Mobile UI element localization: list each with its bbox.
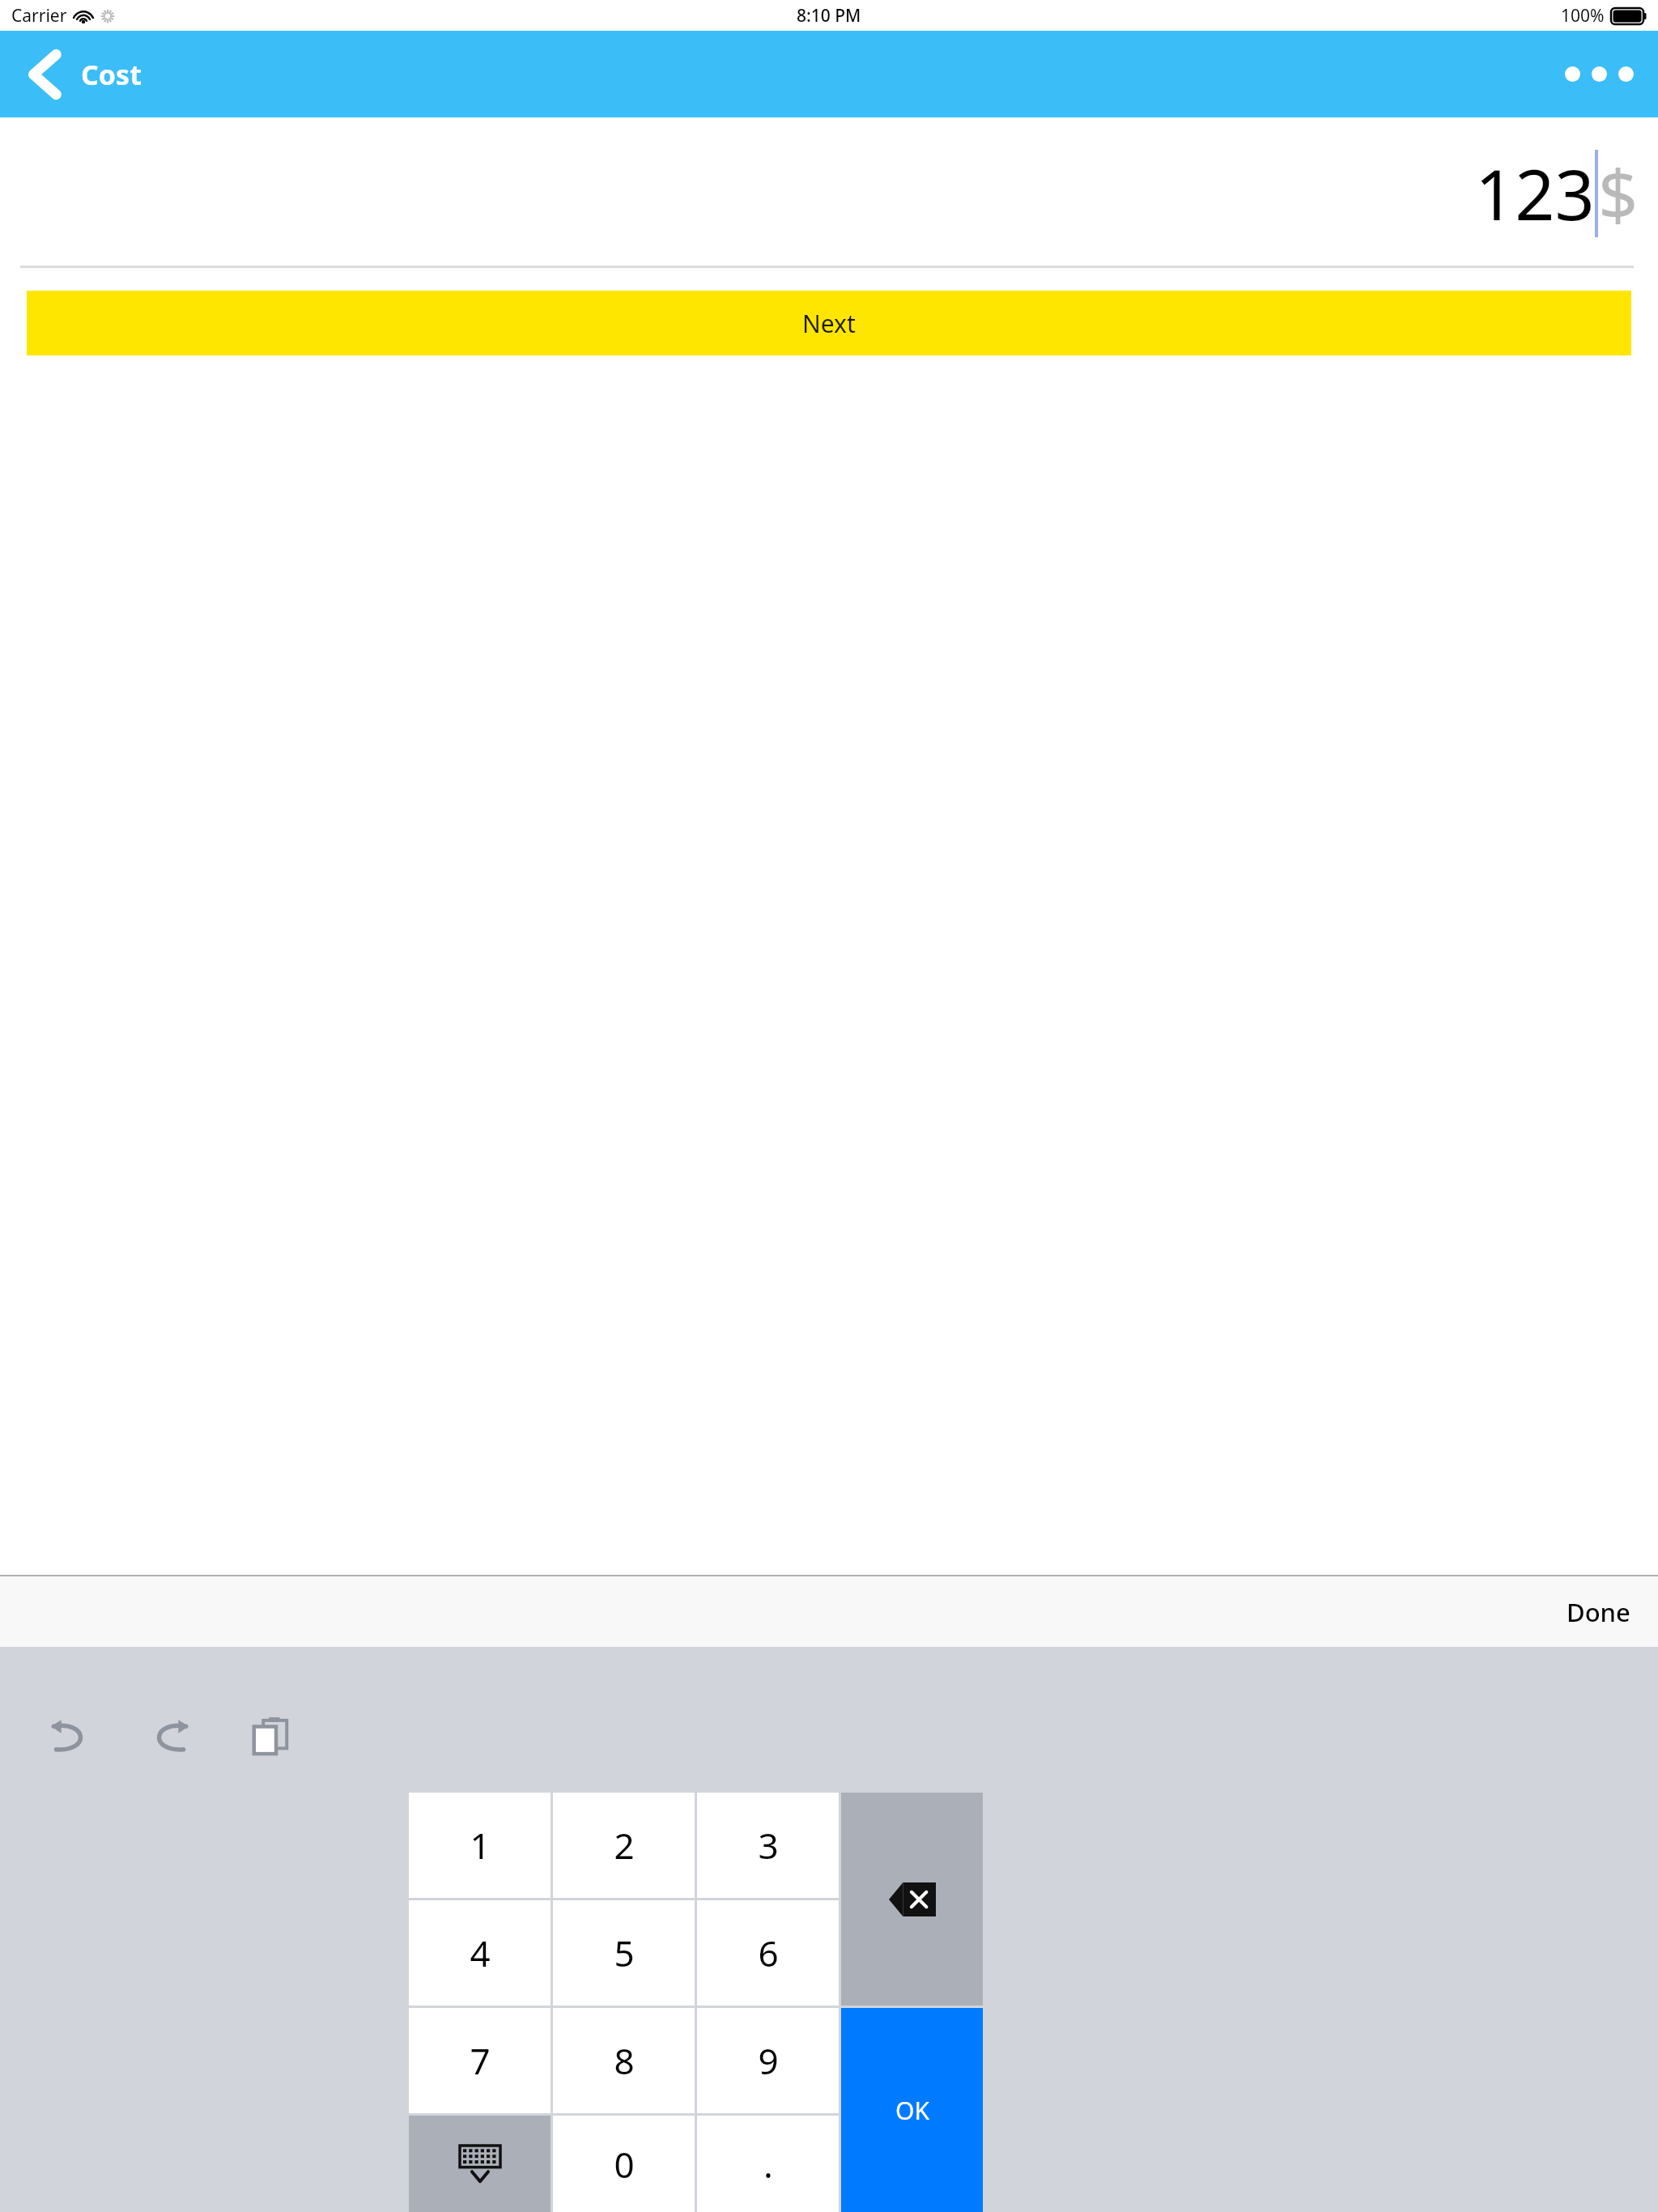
button[interactable]: Undo xyxy=(39,1711,97,1761)
button[interactable]: 0 xyxy=(553,2116,695,2212)
staticText: OK xyxy=(895,2094,929,2127)
staticText: 8 xyxy=(614,2036,635,2085)
staticText: Done xyxy=(1567,1595,1630,1629)
staticText: 5 xyxy=(614,1929,635,1977)
button[interactable]: OK xyxy=(841,2008,983,2212)
staticText: $ xyxy=(1598,146,1639,240)
button[interactable]: Redo xyxy=(142,1711,201,1761)
staticText: . xyxy=(763,2140,773,2189)
button[interactable]: 7 xyxy=(409,2008,551,2113)
staticText: Next xyxy=(802,307,856,340)
button[interactable]: 5 xyxy=(553,1900,695,2006)
staticText: 1 xyxy=(470,1821,491,1870)
button[interactable]: Back xyxy=(0,39,73,110)
staticText: 8:10 PM xyxy=(797,4,861,28)
button[interactable]: Paste xyxy=(244,1708,296,1763)
button[interactable]: . xyxy=(697,2116,839,2212)
staticText: 4 xyxy=(470,1929,491,1977)
button[interactable]: 6 xyxy=(697,1900,839,2006)
button[interactable]: More options xyxy=(1541,45,1658,103)
button[interactable]: 2 xyxy=(553,1793,695,1898)
staticText: 9 xyxy=(758,2036,779,2085)
staticText: 7 xyxy=(470,2036,491,2085)
button[interactable]: Done xyxy=(1539,1582,1658,1642)
button[interactable]: Next xyxy=(27,291,1631,355)
staticText: Carrier xyxy=(11,4,67,28)
staticText: 0 xyxy=(614,2140,635,2189)
button[interactable]: 9 xyxy=(697,2008,839,2113)
staticText: Cost xyxy=(81,56,142,93)
button[interactable]: Hide keyboard xyxy=(409,2116,551,2212)
button[interactable]: 3 xyxy=(697,1793,839,1898)
button[interactable]: 8 xyxy=(553,2008,695,2113)
staticText: 3 xyxy=(758,1821,779,1870)
staticText: 100% xyxy=(1561,4,1605,28)
button[interactable]: 1 xyxy=(409,1793,551,1898)
button[interactable]: 4 xyxy=(409,1900,551,2006)
button[interactable]: Delete xyxy=(841,1793,983,2006)
staticText: 6 xyxy=(758,1929,779,1977)
staticText: 123 xyxy=(1475,146,1595,240)
staticText: 2 xyxy=(614,1821,635,1870)
